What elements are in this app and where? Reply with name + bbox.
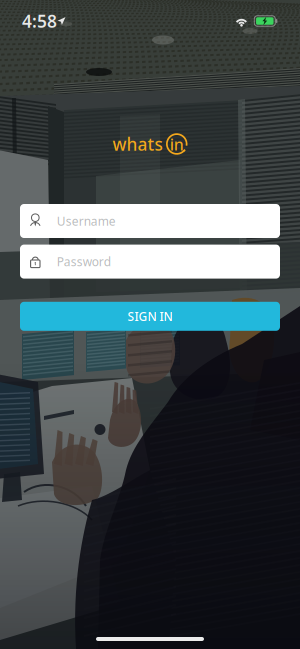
staticText: Username bbox=[57, 213, 116, 229]
staticText: Password bbox=[57, 254, 111, 269]
button[interactable]: Password bbox=[20, 245, 280, 279]
staticText: whats bbox=[112, 132, 162, 155]
button[interactable]: Username bbox=[20, 204, 280, 238]
staticText: in bbox=[170, 134, 184, 155]
button[interactable]: SIGN IN bbox=[20, 302, 280, 331]
staticText: SIGN IN bbox=[127, 308, 172, 324]
staticText: 4:58 bbox=[22, 9, 57, 32]
